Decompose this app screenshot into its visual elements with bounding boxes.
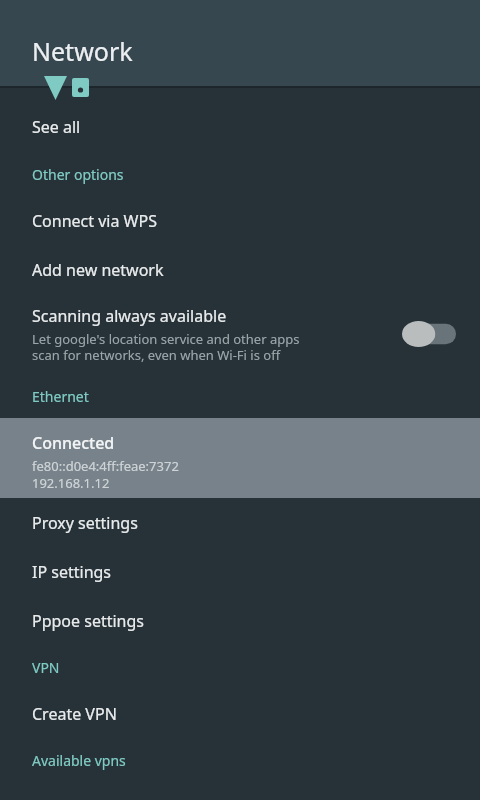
button[interactable]: Scanning always available toggle — [402, 321, 456, 347]
staticText: Add new network — [32, 259, 164, 281]
button[interactable]: Add new network — [0, 245, 480, 294]
staticText: Scanning always available — [32, 305, 227, 327]
button[interactable]: IP settings — [0, 547, 480, 596]
staticText: fe80::d0e4:4ff:feae:7372 192.168.1.12 — [32, 457, 179, 492]
button[interactable]: See all — [0, 102, 480, 152]
staticText: Create VPN — [32, 703, 117, 725]
button[interactable]: Connect via WPS — [0, 196, 480, 245]
staticText: Pppoe settings — [32, 610, 144, 632]
staticText: Network — [32, 34, 133, 68]
button[interactable]: Proxy settings — [0, 498, 480, 547]
staticText: Connected — [32, 432, 115, 454]
button[interactable]: Pppoe settings — [0, 596, 480, 645]
staticText: See all — [32, 116, 81, 138]
button[interactable]: Scanning always available — [0, 294, 480, 374]
staticText: IP settings — [32, 561, 112, 583]
button[interactable]: Create VPN — [0, 689, 480, 738]
button[interactable]: Connected — [0, 418, 480, 498]
staticText: Ethernet — [32, 387, 89, 406]
staticText: Connect via WPS — [32, 210, 157, 232]
staticText: Proxy settings — [32, 512, 138, 534]
staticText: Available vpns — [32, 751, 126, 770]
button[interactable]: Wi-Fi network — [0, 88, 480, 102]
staticText: Let google's location service and other … — [32, 330, 300, 363]
staticText: Other options — [32, 165, 124, 184]
staticText: VPN — [32, 658, 60, 677]
